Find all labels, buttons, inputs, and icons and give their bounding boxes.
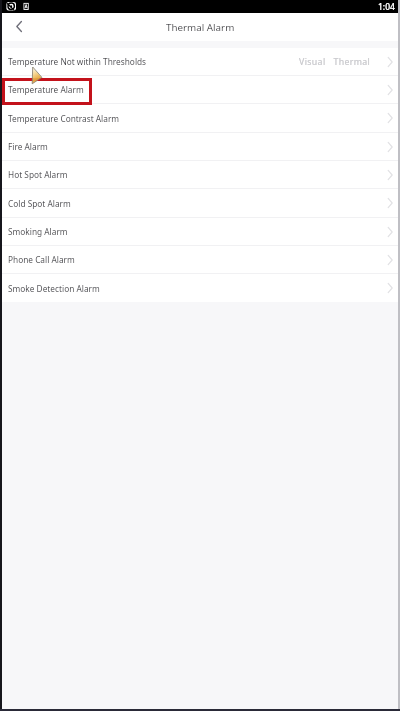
button[interactable]: Temperature Alarm (0, 76, 400, 103)
staticText: Visual Thermal (299, 56, 371, 68)
staticText: Temperature Not within Thresholds (8, 56, 147, 67)
button[interactable]: Smoking Alarm (0, 218, 400, 245)
staticText: Hot Spot Alarm (8, 169, 68, 180)
button[interactable]: Back (0, 13, 34, 41)
button[interactable]: Phone Call Alarm (0, 246, 400, 273)
staticText: Smoking Alarm (8, 226, 68, 237)
button[interactable]: Cold Spot Alarm (0, 189, 400, 217)
button[interactable]: Fire Alarm (0, 133, 400, 160)
staticText: Smoke Detection Alarm (8, 283, 100, 294)
staticText: Phone Call Alarm (8, 254, 75, 265)
button[interactable]: Temperature Not within Thresholds (0, 48, 400, 75)
staticText: 1:04 (378, 1, 395, 13)
staticText: Temperature Alarm (8, 84, 84, 95)
button[interactable]: Hot Spot Alarm (0, 161, 400, 188)
button[interactable]: Temperature Contrast Alarm (0, 104, 400, 132)
staticText: Cold Spot Alarm (8, 198, 71, 209)
staticText: Fire Alarm (8, 141, 48, 152)
button[interactable]: Smoke Detection Alarm (0, 274, 400, 302)
staticText: Thermal Alarm (166, 21, 235, 34)
staticText: Temperature Contrast Alarm (8, 113, 120, 124)
